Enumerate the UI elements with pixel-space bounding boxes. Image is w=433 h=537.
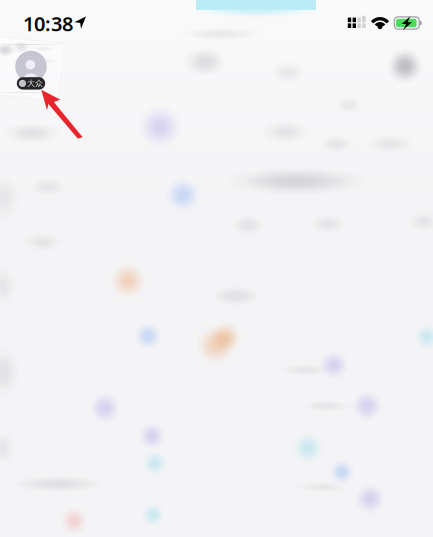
staticText: 大众 <box>27 78 43 88</box>
staticText: 10:38 <box>23 10 73 37</box>
button[interactable]: 大众 <box>17 77 45 90</box>
